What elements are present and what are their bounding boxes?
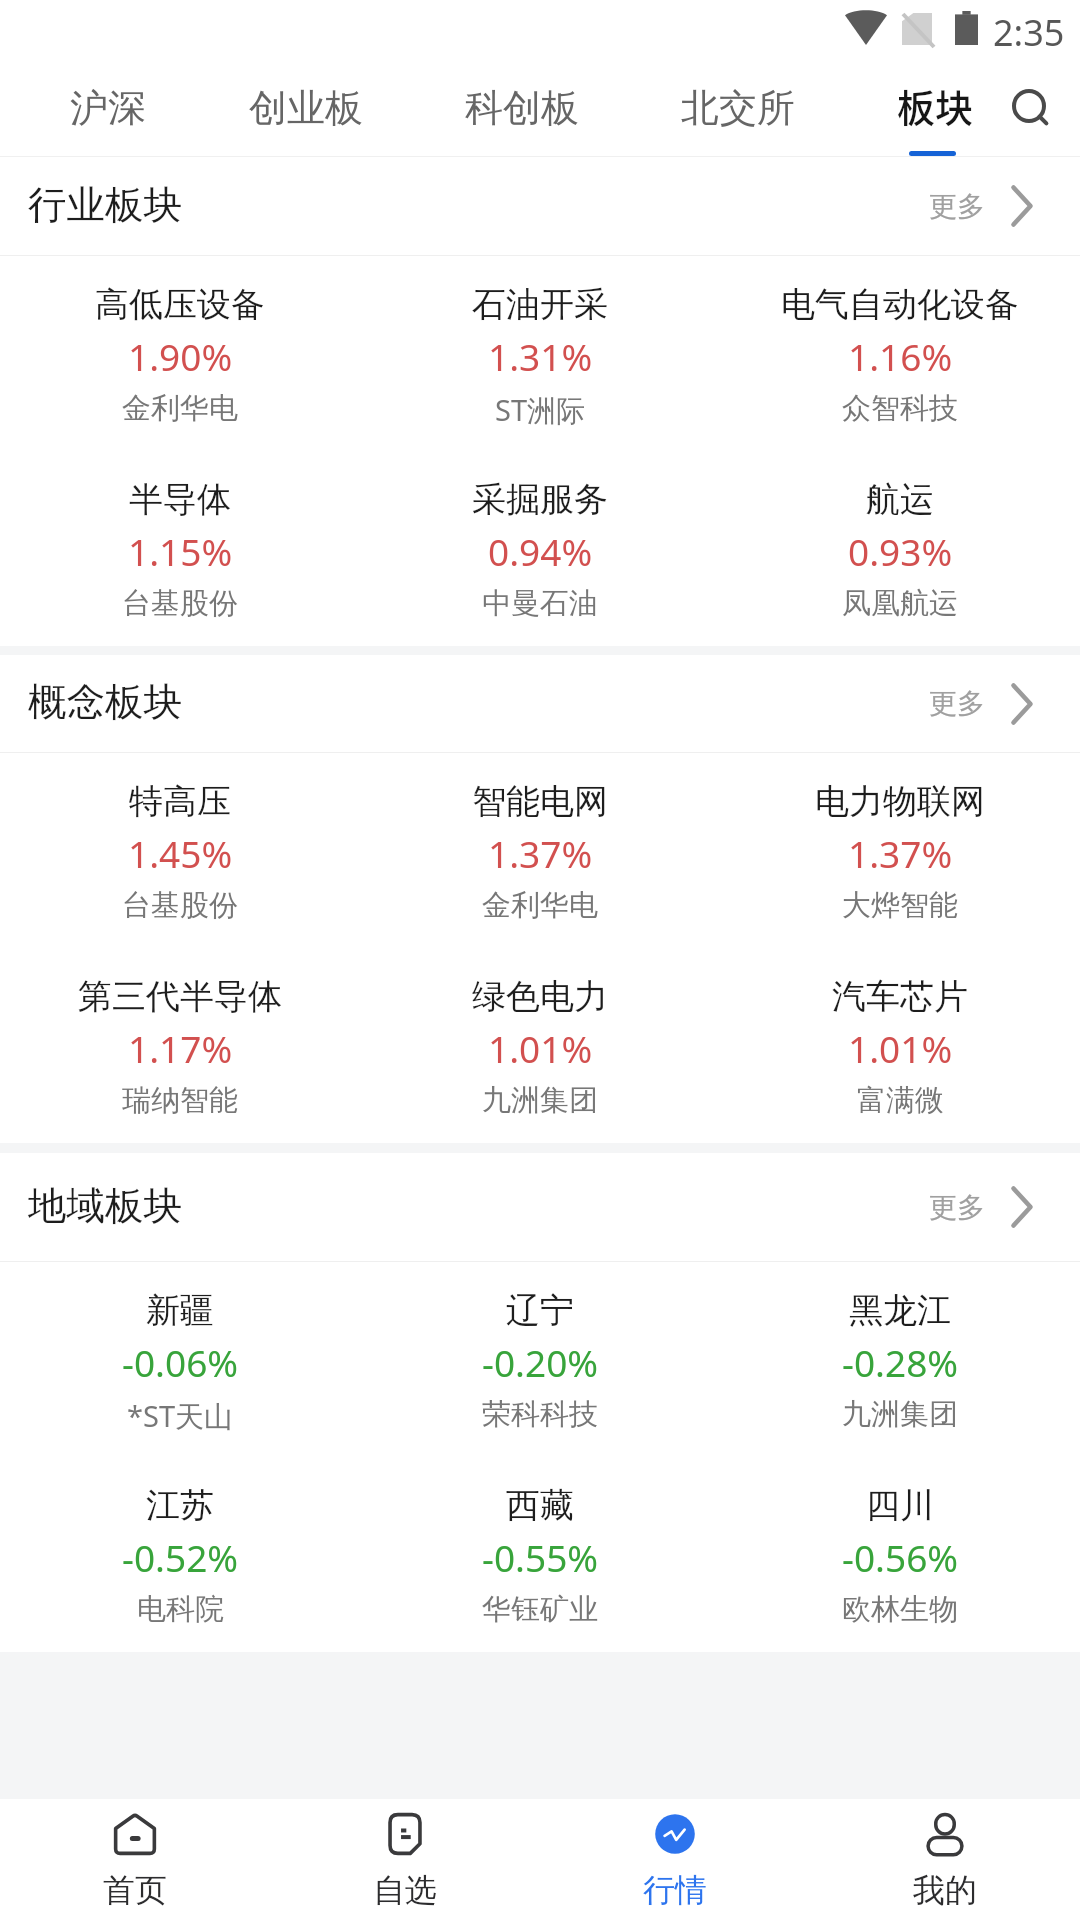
staticText: 江苏 — [146, 1484, 214, 1527]
staticText: 沪深 — [70, 84, 146, 132]
staticText: 凤凰航运 — [842, 585, 958, 622]
staticText: 金利华电 — [122, 390, 238, 427]
staticText: 高低压设备 — [95, 283, 265, 326]
staticText: 台基股份 — [122, 585, 238, 622]
staticText: 更多 — [929, 686, 985, 721]
staticText: ST洲际 — [495, 390, 586, 430]
staticText: 华钰矿业 — [482, 1591, 598, 1628]
staticText: 更多 — [929, 189, 985, 224]
staticText: -0.20% — [482, 1337, 599, 1387]
staticText: 0.93% — [848, 526, 953, 576]
button[interactable]: 我的 — [810, 1799, 1080, 1920]
staticText: 第三代半导体 — [78, 975, 282, 1018]
staticText: 1.31% — [488, 331, 593, 381]
staticText: 电力物联网 — [815, 780, 985, 823]
button[interactable]: 电气自动化设备 — [720, 256, 1080, 451]
staticText: 1.16% — [848, 331, 953, 381]
staticText: 1.01% — [488, 1023, 593, 1073]
staticText: 西藏 — [506, 1484, 574, 1527]
staticText: 荣科科技 — [482, 1396, 598, 1433]
staticText: 北交所 — [681, 84, 795, 132]
staticText: 更多 — [929, 1190, 985, 1225]
staticText: 0.94% — [488, 526, 593, 576]
button[interactable]: 特高压 — [0, 753, 360, 948]
staticText: 首页 — [103, 1870, 167, 1910]
button[interactable]: 辽宁 — [360, 1262, 720, 1457]
staticText: -0.55% — [482, 1532, 599, 1582]
button[interactable]: 汽车芯片 — [720, 948, 1080, 1143]
staticText: 1.45% — [128, 828, 233, 878]
staticText: 汽车芯片 — [832, 975, 968, 1018]
staticText: 采掘服务 — [472, 478, 608, 521]
staticText: 众智科技 — [842, 390, 958, 427]
button[interactable]: 新疆 — [0, 1262, 360, 1457]
staticText: 1.17% — [128, 1023, 233, 1073]
staticText: 我的 — [913, 1870, 977, 1910]
staticText: 欧林生物 — [842, 1591, 958, 1628]
staticText: -0.52% — [122, 1532, 239, 1582]
button[interactable]: 航运 — [720, 451, 1080, 646]
button[interactable]: 板块 — [846, 62, 1026, 157]
button[interactable]: 江苏 — [0, 1457, 360, 1652]
button[interactable]: 沪深 — [18, 62, 198, 157]
button[interactable]: 首页 — [0, 1799, 270, 1920]
staticText: 科创板 — [465, 84, 579, 132]
button[interactable]: 概念板块 — [0, 655, 1080, 752]
button[interactable]: 行业板块 — [0, 157, 1080, 255]
staticText: 地域板块 — [28, 1182, 182, 1231]
staticText: 黑龙江 — [849, 1289, 951, 1332]
button[interactable]: Search — [1012, 89, 1054, 131]
button[interactable]: 自选 — [270, 1799, 540, 1920]
staticText: 行业板块 — [28, 181, 182, 230]
staticText: 1.90% — [128, 331, 233, 381]
staticText: 台基股份 — [122, 887, 238, 924]
button[interactable]: 高低压设备 — [0, 256, 360, 451]
staticText: 智能电网 — [472, 780, 608, 823]
staticText: 瑞纳智能 — [122, 1082, 238, 1119]
button[interactable]: 采掘服务 — [360, 451, 720, 646]
button[interactable]: 北交所 — [648, 62, 828, 157]
button[interactable]: 半导体 — [0, 451, 360, 646]
staticText: 电气自动化设备 — [781, 283, 1019, 326]
staticText: 自选 — [373, 1870, 437, 1910]
staticText: 概念板块 — [28, 678, 182, 727]
staticText: -0.56% — [842, 1532, 959, 1582]
staticText: 九洲集团 — [842, 1396, 958, 1433]
staticText: -0.28% — [842, 1337, 959, 1387]
staticText: 1.37% — [848, 828, 953, 878]
staticText: 石油开采 — [472, 283, 608, 326]
staticText: 绿色电力 — [472, 975, 608, 1018]
button[interactable]: 创业板 — [216, 62, 396, 157]
staticText: 行情 — [643, 1870, 707, 1910]
staticText: 创业板 — [249, 84, 363, 132]
button[interactable]: 行情 — [540, 1799, 810, 1920]
button[interactable]: 科创板 — [432, 62, 612, 157]
staticText: 1.37% — [488, 828, 593, 878]
staticText: 1.15% — [128, 526, 233, 576]
button[interactable]: 智能电网 — [360, 753, 720, 948]
staticText: 四川 — [866, 1484, 934, 1527]
staticText: 大烨智能 — [842, 887, 958, 924]
staticText: *ST天山 — [127, 1396, 234, 1436]
staticText: 板块 — [897, 78, 974, 133]
staticText: -0.06% — [122, 1337, 239, 1387]
button[interactable]: 绿色电力 — [360, 948, 720, 1143]
staticText: 航运 — [866, 478, 934, 521]
staticText: 2:35 — [993, 8, 1065, 57]
staticText: 九洲集团 — [482, 1082, 598, 1119]
button[interactable]: 第三代半导体 — [0, 948, 360, 1143]
staticText: 中曼石油 — [482, 585, 598, 622]
button[interactable]: 西藏 — [360, 1457, 720, 1652]
button[interactable]: 石油开采 — [360, 256, 720, 451]
staticText: 辽宁 — [506, 1289, 574, 1332]
staticText: 新疆 — [146, 1289, 214, 1332]
staticText: 1.01% — [848, 1023, 953, 1073]
button[interactable]: 黑龙江 — [720, 1262, 1080, 1457]
staticText: 半导体 — [129, 478, 231, 521]
button[interactable]: 地域板块 — [0, 1153, 1080, 1261]
staticText: 特高压 — [129, 780, 231, 823]
staticText: 金利华电 — [482, 887, 598, 924]
staticText: 富满微 — [857, 1082, 944, 1119]
button[interactable]: 电力物联网 — [720, 753, 1080, 948]
button[interactable]: 四川 — [720, 1457, 1080, 1652]
